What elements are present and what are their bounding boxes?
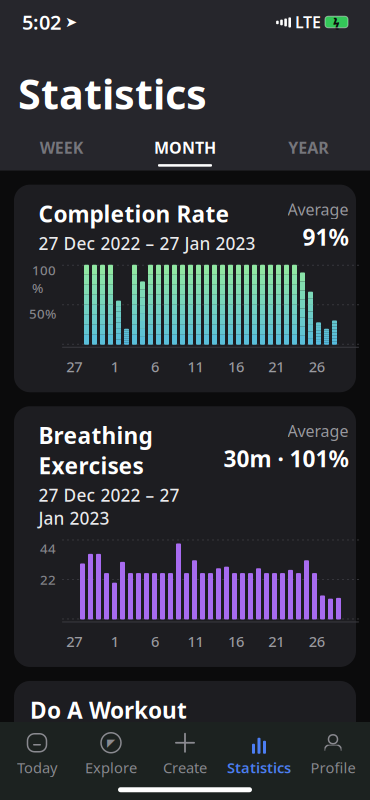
staticText: 16 (228, 631, 244, 651)
staticText: 1 (111, 357, 119, 376)
staticText: 6 (151, 357, 159, 376)
staticText: 91% (302, 222, 348, 252)
staticText: 26 (309, 357, 325, 376)
button[interactable]: ◤ (74, 730, 148, 779)
staticText: Thu (261, 741, 290, 762)
staticText: 27 Dec 2022 – 27 Jan 2023 (38, 483, 179, 529)
staticText: Fri (312, 741, 331, 762)
staticText: 21 (268, 631, 284, 651)
staticText: 50% (29, 305, 56, 322)
staticText: Create (163, 758, 207, 777)
staticText: Explore (85, 758, 137, 777)
staticText: 16 (228, 357, 244, 376)
staticText: MONTH (154, 137, 216, 158)
button[interactable]: Profile (296, 730, 370, 779)
staticText: Statistics (227, 758, 291, 777)
staticText: Average (287, 420, 348, 441)
staticText: 1 (111, 631, 119, 651)
staticText: 22 (40, 571, 56, 588)
button[interactable]: YEAR (247, 137, 370, 171)
staticText: 21 (268, 357, 284, 376)
staticText: 27 Dec 2022 – 27 Jan 2023 (38, 232, 255, 255)
staticText: 27 (66, 357, 82, 376)
staticText: 6 (151, 631, 159, 651)
staticText: 11 (187, 357, 203, 376)
button[interactable]: MONTH (123, 137, 247, 171)
staticText: 5:02 (22, 9, 61, 35)
button[interactable]: Today (0, 730, 74, 779)
button[interactable]: 27 (162, 784, 208, 800)
staticText: 27 (174, 788, 196, 800)
staticText: 11 (187, 631, 203, 651)
staticText: 44 (40, 539, 56, 557)
staticText: ➤ (65, 14, 77, 30)
staticText: Statistics (18, 66, 207, 121)
staticText: Profile (310, 758, 355, 777)
staticText: Breathing Exercises (38, 420, 152, 480)
staticText: 26 (309, 631, 325, 651)
staticText: ϟ (333, 14, 340, 30)
staticText: 28 (219, 788, 241, 800)
staticText: 27 (66, 631, 82, 651)
staticText: Completion Rate (38, 199, 229, 229)
staticText: ◤ (107, 737, 115, 749)
staticText: Do A Workout (30, 695, 187, 725)
staticText: WEEK (40, 137, 84, 158)
staticText: LTE (295, 11, 321, 33)
button[interactable]: Create (148, 730, 222, 779)
staticText: Sun (80, 741, 109, 762)
button[interactable]: Statistics (222, 730, 296, 779)
button[interactable]: WEEK (0, 137, 123, 171)
staticText: 100% (32, 261, 56, 297)
staticText: Today (17, 758, 57, 777)
staticText: Tue (171, 741, 198, 762)
button[interactable]: 28 (208, 784, 253, 800)
staticText: Sat (37, 741, 61, 762)
staticText: 30m · 101% (223, 443, 348, 474)
staticText: YEAR (288, 137, 328, 158)
staticText: Average (287, 199, 348, 220)
